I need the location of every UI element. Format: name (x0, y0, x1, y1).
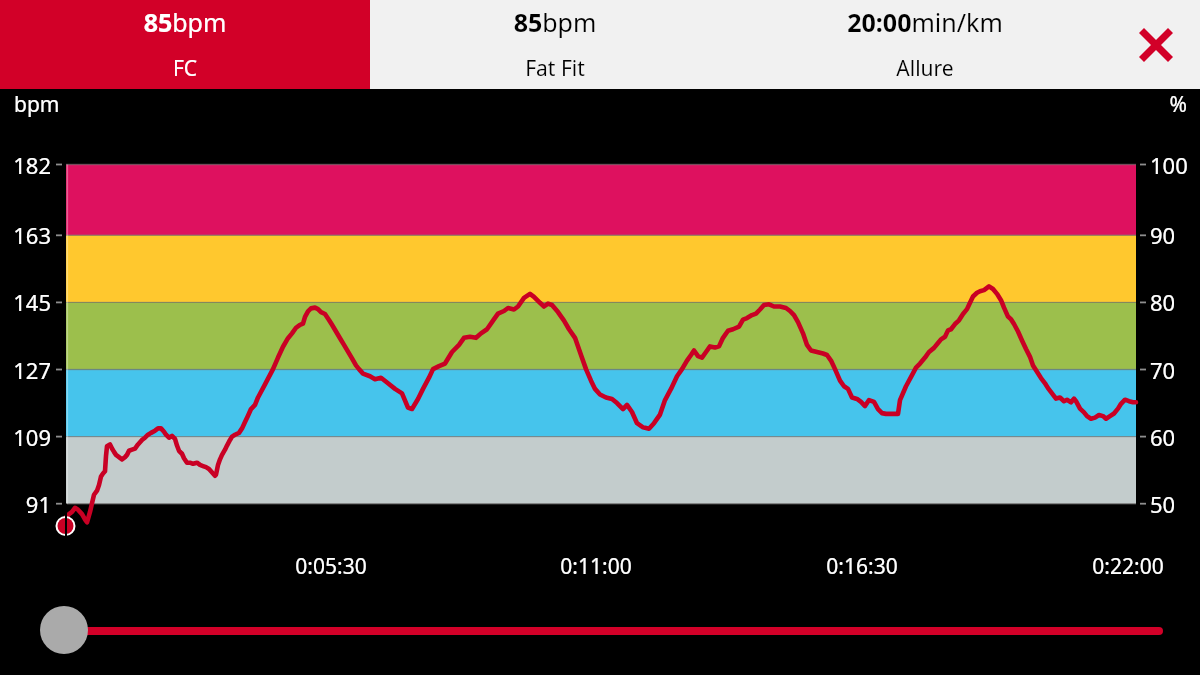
button[interactable]: 85bpm (370, 0, 740, 89)
staticText: 109 (0, 422, 51, 452)
staticText: Allure (740, 54, 1110, 83)
staticText: 182 (0, 150, 51, 180)
staticText: 0:11:00 (506, 552, 686, 581)
staticText: 0:16:30 (772, 552, 952, 581)
staticText: Fat Fit (370, 54, 740, 83)
staticText: 80 (1150, 287, 1200, 317)
staticText: 50 (1150, 489, 1200, 519)
button[interactable]: 20:00min/km (740, 0, 1110, 89)
staticText: 0:05:30 (241, 552, 421, 581)
staticText: % (967, 90, 1187, 119)
staticText: 90 (1150, 220, 1200, 250)
staticText: 70 (1150, 355, 1200, 385)
staticText: bpm (14, 90, 234, 119)
staticText: 127 (0, 355, 51, 385)
staticText: 85bpm (370, 5, 740, 39)
staticText: 163 (0, 220, 51, 250)
staticText: 0:22:00 (1038, 552, 1200, 581)
staticText: 85bpm (0, 5, 370, 39)
button[interactable]: Scrub timeline (40, 606, 88, 654)
staticText: 91 (0, 489, 51, 519)
staticText: 145 (0, 287, 51, 317)
staticText: FC (0, 54, 370, 83)
staticText: 60 (1150, 422, 1200, 452)
button[interactable]: Close (1110, 0, 1200, 89)
button[interactable]: 85bpm (0, 0, 370, 89)
staticText: 100 (1150, 150, 1200, 180)
staticText: 20:00min/km (740, 5, 1110, 39)
